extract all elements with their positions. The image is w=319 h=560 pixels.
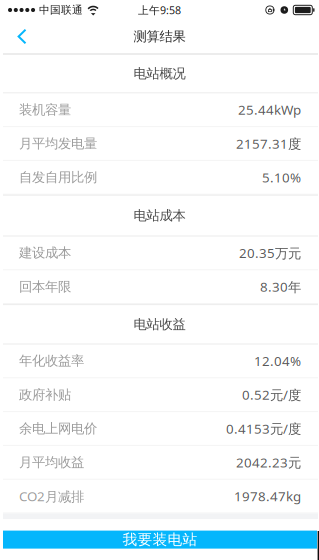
staticText: 上午9:58 — [138, 3, 181, 17]
staticText: 自发自用比例 — [19, 169, 97, 185]
staticText: 余电上网电价 — [19, 420, 97, 437]
staticText: 12.04% — [254, 352, 301, 370]
staticText: 5.10% — [262, 168, 301, 186]
staticText: 年化收益率 — [19, 353, 84, 369]
staticText: 建设成本 — [19, 245, 71, 261]
staticText: 0.4153元/度 — [226, 420, 301, 437]
button[interactable]: 我要装电站 — [0, 519, 319, 560]
staticText: 20.35万元 — [239, 244, 301, 262]
staticText: 2042.23元 — [236, 453, 301, 471]
staticText: 电站概况 — [133, 65, 185, 82]
staticText: 25.44kWp — [238, 101, 301, 118]
staticText: 装机容量 — [19, 101, 71, 118]
staticText: 测算结果 — [133, 28, 185, 45]
staticText: 1978.47kg — [234, 487, 301, 505]
staticText: 回本年限 — [19, 278, 71, 295]
staticText: 电站成本 — [133, 207, 185, 224]
staticText: CO2月减排 — [19, 487, 84, 505]
staticText: 8.30年 — [260, 278, 301, 295]
staticText: 月平均发电量 — [19, 135, 97, 152]
staticText: 中国联通 — [39, 3, 83, 16]
staticText: 月平均收益 — [19, 454, 84, 470]
staticText: 2157.31度 — [236, 135, 301, 152]
staticText: 电站收益 — [133, 316, 185, 332]
staticText: 政府补贴 — [19, 386, 71, 403]
staticText: 我要装电站 — [122, 531, 197, 549]
staticText: 0.52元/度 — [242, 386, 301, 403]
button[interactable]: Back — [0, 20, 44, 53]
